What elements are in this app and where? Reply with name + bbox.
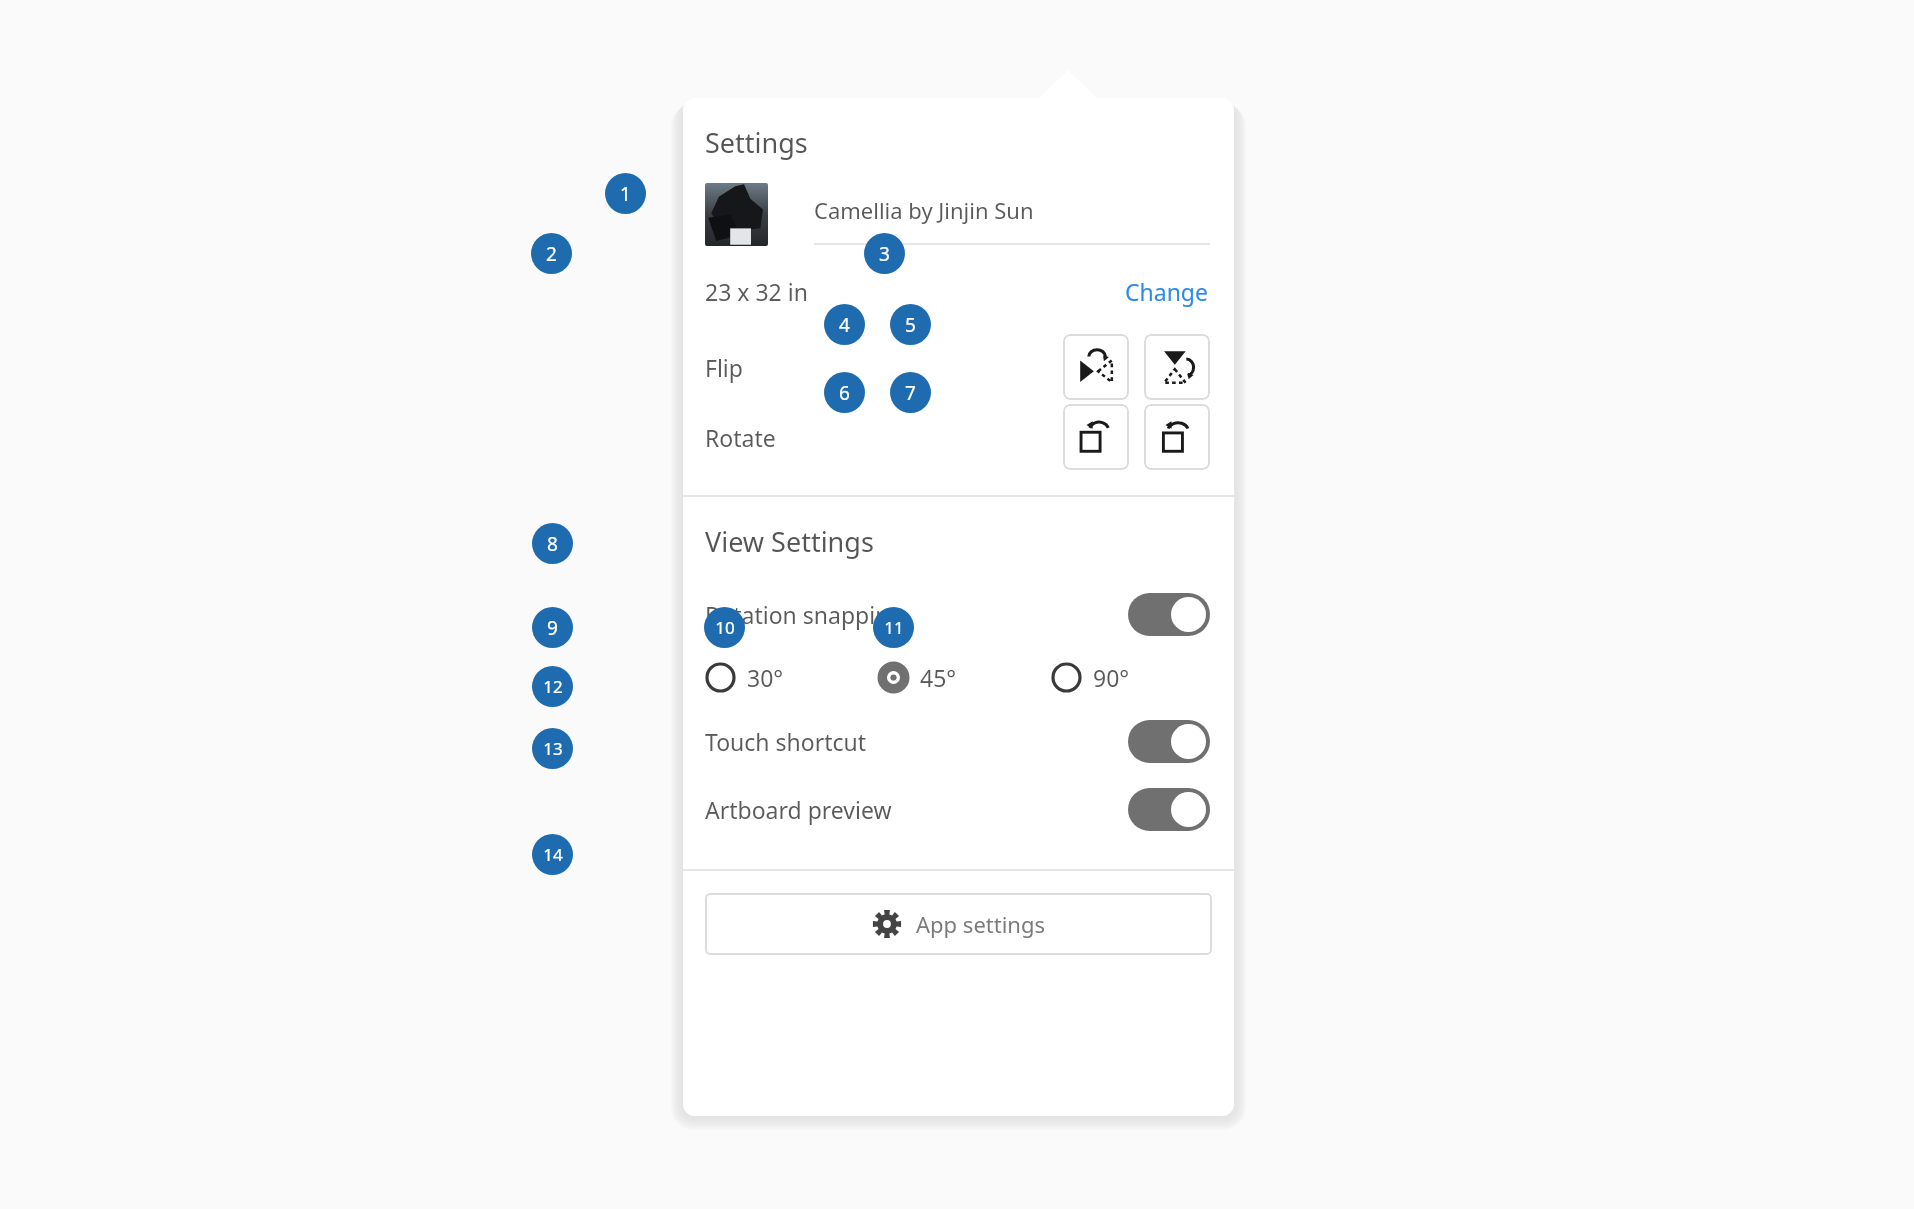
button[interactable]: 30° bbox=[705, 662, 878, 693]
button[interactable] bbox=[705, 183, 768, 246]
staticText: 5 bbox=[905, 312, 916, 338]
staticText: 9 bbox=[547, 615, 558, 641]
staticText: 4 bbox=[839, 312, 850, 338]
staticText: 11 bbox=[884, 616, 904, 639]
staticText: 6 bbox=[839, 380, 850, 406]
staticText: 23 x 32 in bbox=[705, 276, 808, 307]
button[interactable]: Change bbox=[1123, 272, 1210, 311]
staticText: 7 bbox=[905, 380, 916, 406]
staticText: App settings bbox=[916, 909, 1046, 939]
button[interactable]: Touch shortcut bbox=[683, 715, 1234, 767]
staticText: 2 bbox=[546, 241, 557, 267]
button[interactable]: Flip 2 bbox=[1144, 334, 1210, 400]
button[interactable]: App settings bbox=[705, 893, 1212, 955]
staticText: View Settings bbox=[705, 523, 874, 560]
button[interactable]: Rotation snapping bbox=[683, 588, 1234, 640]
staticText: 45° bbox=[920, 662, 957, 693]
staticText: 90° bbox=[1093, 662, 1130, 693]
staticText: Rotation snapping bbox=[705, 599, 904, 630]
button[interactable]: 90° bbox=[1051, 662, 1210, 693]
button[interactable]: Artboard preview bbox=[683, 783, 1234, 835]
staticText: 12 bbox=[543, 675, 563, 698]
staticText: Artboard preview bbox=[705, 794, 892, 825]
button[interactable]: Rotate 2 bbox=[1144, 404, 1210, 470]
staticText: 10 bbox=[715, 616, 735, 639]
staticText: 1 bbox=[620, 181, 631, 207]
button[interactable]: Flip 1 bbox=[1063, 334, 1129, 400]
staticText: Change bbox=[1125, 276, 1208, 307]
staticText: Rotate bbox=[705, 422, 776, 453]
button[interactable]: 45° bbox=[878, 662, 1051, 693]
staticText: 30° bbox=[747, 662, 784, 693]
staticText: Settings bbox=[705, 124, 808, 161]
staticText: Touch shortcut bbox=[705, 726, 867, 757]
staticText: 13 bbox=[543, 737, 563, 760]
staticText: 14 bbox=[543, 843, 563, 866]
staticText: Camellia by Jinjin Sun bbox=[814, 195, 1034, 225]
staticText: 8 bbox=[547, 531, 558, 557]
button[interactable]: Rotate 1 bbox=[1063, 404, 1129, 470]
staticText: 3 bbox=[879, 241, 890, 267]
staticText: Flip bbox=[705, 352, 743, 383]
